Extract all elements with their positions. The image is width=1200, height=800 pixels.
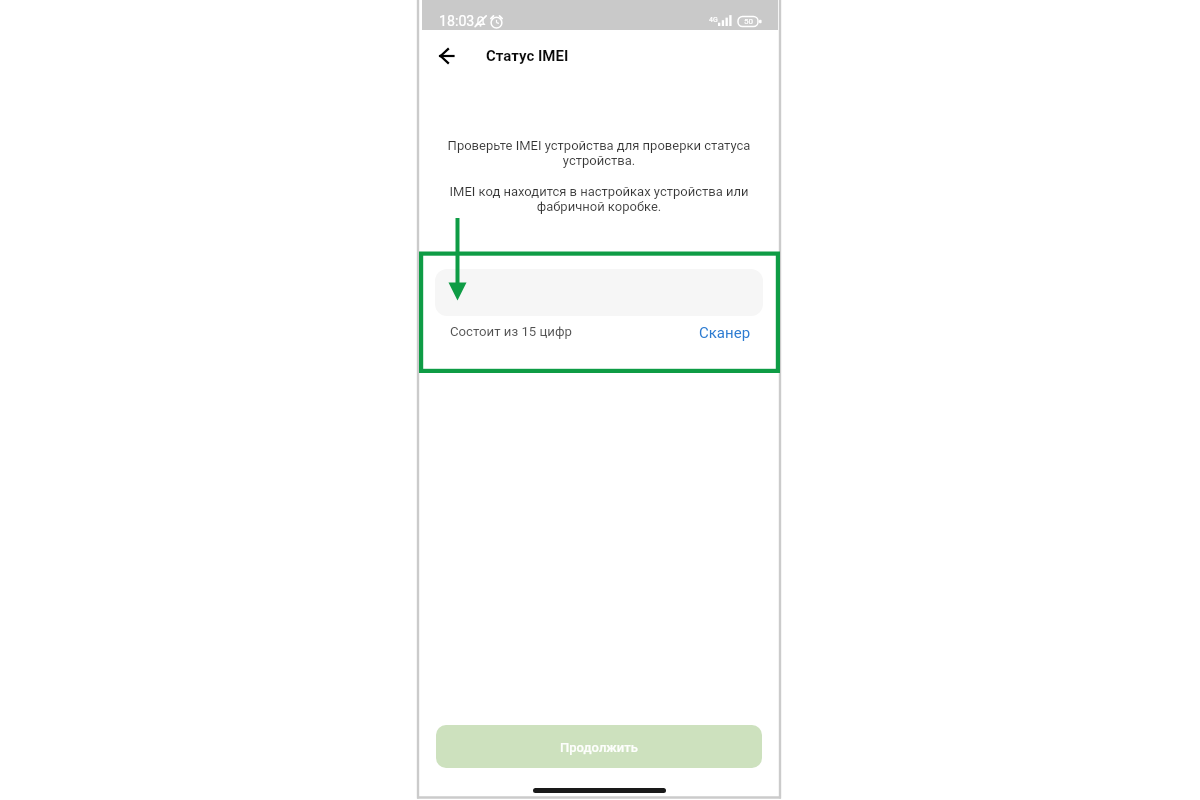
button[interactable]: Продолжить	[436, 725, 762, 768]
staticText: Состоит из 15 цифр	[450, 324, 572, 339]
button[interactable]: Back	[429, 38, 465, 74]
staticText: IMEI код находится в настройках устройст…	[444, 184, 754, 214]
button[interactable]: Сканер	[699, 324, 751, 342]
staticText: Проверьте IMEI устройства для проверки с…	[444, 138, 754, 168]
button[interactable]: Введите IMEI	[435, 269, 763, 316]
staticText: Статус IMEI	[486, 47, 569, 65]
staticText: 50	[744, 17, 753, 26]
staticText: Сканер	[699, 324, 751, 342]
staticText: 4G	[709, 16, 718, 24]
staticText: Продолжить	[560, 740, 638, 755]
staticText: 18:03	[439, 13, 475, 30]
